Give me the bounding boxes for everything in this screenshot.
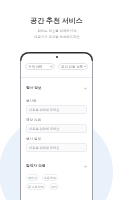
staticText: 공간 추천 서비스 [30, 16, 83, 26]
button[interactable]: 더보기 [83, 164, 87, 168]
staticText: 내용을 입력해 주세요 [29, 127, 60, 131]
button[interactable]: 중·고등학생 [26, 183, 46, 190]
button[interactable]: 더보기 [83, 86, 87, 90]
staticText: 행사 정보 [26, 85, 42, 90]
staticText: 내용을 입력해 주세요 [29, 146, 60, 150]
button[interactable]: 초등학생 [42, 174, 58, 181]
button[interactable]: 내용을 입력해 주세요 [26, 124, 87, 133]
staticText: 초등학생 [44, 176, 56, 180]
staticText: 원하는 장소를 입력하시면 전문가가 공간을 추천해드려요 [34, 28, 80, 39]
button[interactable]: 지역 전체 [25, 63, 55, 70]
staticText: 참여자 연령 [26, 163, 46, 168]
button[interactable]: 공간 유형 전체 [58, 63, 88, 70]
staticText: 행사명 [26, 99, 37, 103]
staticText: 중·고등학생 [28, 185, 44, 189]
staticText: 지역 전체 [28, 64, 43, 69]
staticText: 내용을 입력해 주세요 [29, 108, 60, 112]
button[interactable]: 성인 [49, 183, 59, 190]
staticText: 영유아 [28, 176, 37, 180]
button[interactable]: 내용을 입력해 주세요 [26, 143, 87, 152]
button[interactable]: 영유아 [26, 174, 39, 181]
staticText: 행사 일정 [26, 136, 41, 141]
staticText: 예상 인원 [26, 117, 41, 122]
staticText: 공간 유형 전체 [61, 64, 84, 69]
staticText: 성인 [51, 185, 57, 189]
button[interactable]: 내용을 입력해 주세요 [26, 105, 87, 114]
